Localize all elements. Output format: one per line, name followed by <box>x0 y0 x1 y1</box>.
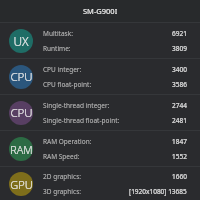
staticText: CPU <box>10 105 33 121</box>
staticText: [1920x1080] 13685 <box>129 187 187 196</box>
staticText: 6921 <box>172 29 187 38</box>
staticText: 1847 <box>172 137 187 146</box>
button[interactable]: GPU category <box>0 167 200 200</box>
staticText: CPU integer: <box>43 65 82 74</box>
staticText: 2481 <box>172 116 187 125</box>
staticText: UX <box>13 33 29 49</box>
staticText: 1552 <box>172 152 187 161</box>
staticText: 2D graphics: <box>43 172 82 181</box>
staticText: Runtime: <box>43 44 71 53</box>
staticText: 3586 <box>172 80 187 89</box>
staticText: 3D graphics: <box>43 187 82 196</box>
button[interactable]: SM-G900I <box>0 0 200 22</box>
staticText: RAM Speed: <box>43 152 80 161</box>
staticText: Single-thread integer: <box>43 101 110 110</box>
button[interactable]: UX category <box>0 23 200 58</box>
other: CPU category <box>9 65 33 89</box>
staticText: GPU <box>10 177 33 192</box>
staticText: CPU float-point: <box>43 80 92 89</box>
other: UX category <box>9 29 33 53</box>
staticText: CPU <box>10 69 33 85</box>
other: RAM category <box>9 137 33 161</box>
button[interactable]: CPU category <box>0 95 200 130</box>
staticText: RAM Operation: <box>43 137 92 146</box>
staticText: Multitask: <box>43 29 73 38</box>
button[interactable]: RAM category <box>0 131 200 166</box>
staticText: 1660 <box>172 172 187 181</box>
button[interactable]: CPU category <box>0 59 200 94</box>
other: CPU category <box>9 101 33 125</box>
staticText: Single-thread float-point: <box>43 116 120 125</box>
staticText: 2744 <box>172 101 187 110</box>
staticText: SM-G900I <box>83 6 118 16</box>
staticText: RAM <box>10 142 33 157</box>
other: GPU category <box>9 172 33 196</box>
staticText: 3400 <box>172 65 187 74</box>
staticText: 3809 <box>172 44 187 53</box>
